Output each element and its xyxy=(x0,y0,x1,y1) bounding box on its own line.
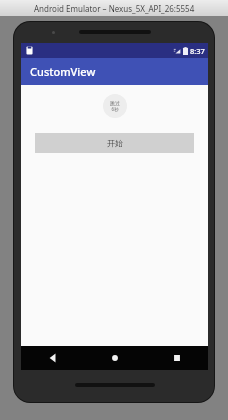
staticText: 6秒 xyxy=(111,106,119,112)
button[interactable]: Recents xyxy=(146,346,208,370)
staticText: Android Emulator – Nexus_5X_API_26:5554 xyxy=(34,3,195,14)
staticText: 8:37 xyxy=(190,46,205,56)
button[interactable]: Custom circular view xyxy=(103,94,127,118)
staticText: CustomView xyxy=(30,64,96,79)
staticText: 开始 xyxy=(107,138,123,148)
button[interactable]: Back xyxy=(21,346,84,370)
button[interactable]: Home xyxy=(84,346,146,370)
button[interactable]: 开始 xyxy=(35,133,194,153)
staticText: 跳过 xyxy=(110,100,120,106)
